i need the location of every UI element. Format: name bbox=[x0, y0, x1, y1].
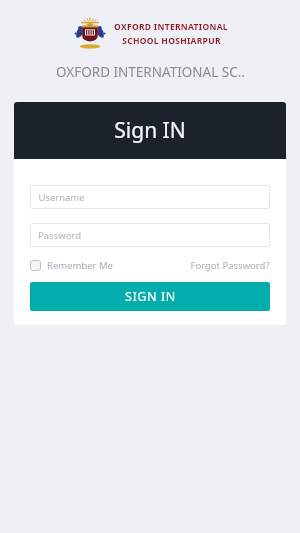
button[interactable]: SIGN IN bbox=[30, 282, 270, 311]
staticText: Forgot Password? bbox=[190, 259, 270, 272]
staticText: OXFORD INTERNATIONAL bbox=[114, 21, 228, 33]
staticText: OXFORD INTERNATIONAL SC.. bbox=[56, 63, 245, 81]
staticText: Sign IN bbox=[114, 116, 186, 145]
staticText: SIGN IN bbox=[125, 288, 176, 305]
button[interactable]: Password bbox=[30, 223, 270, 247]
staticText: Remember Me bbox=[47, 259, 113, 272]
button[interactable]: Username bbox=[30, 185, 270, 209]
staticText: Username bbox=[38, 191, 85, 204]
staticText: SCHOOL HOSHIARPUR bbox=[122, 35, 221, 47]
button[interactable]: Forgot Password? bbox=[190, 257, 270, 274]
other: School crest bbox=[73, 17, 107, 51]
button[interactable]: Remember Me bbox=[30, 257, 113, 274]
staticText: Password bbox=[38, 229, 81, 242]
